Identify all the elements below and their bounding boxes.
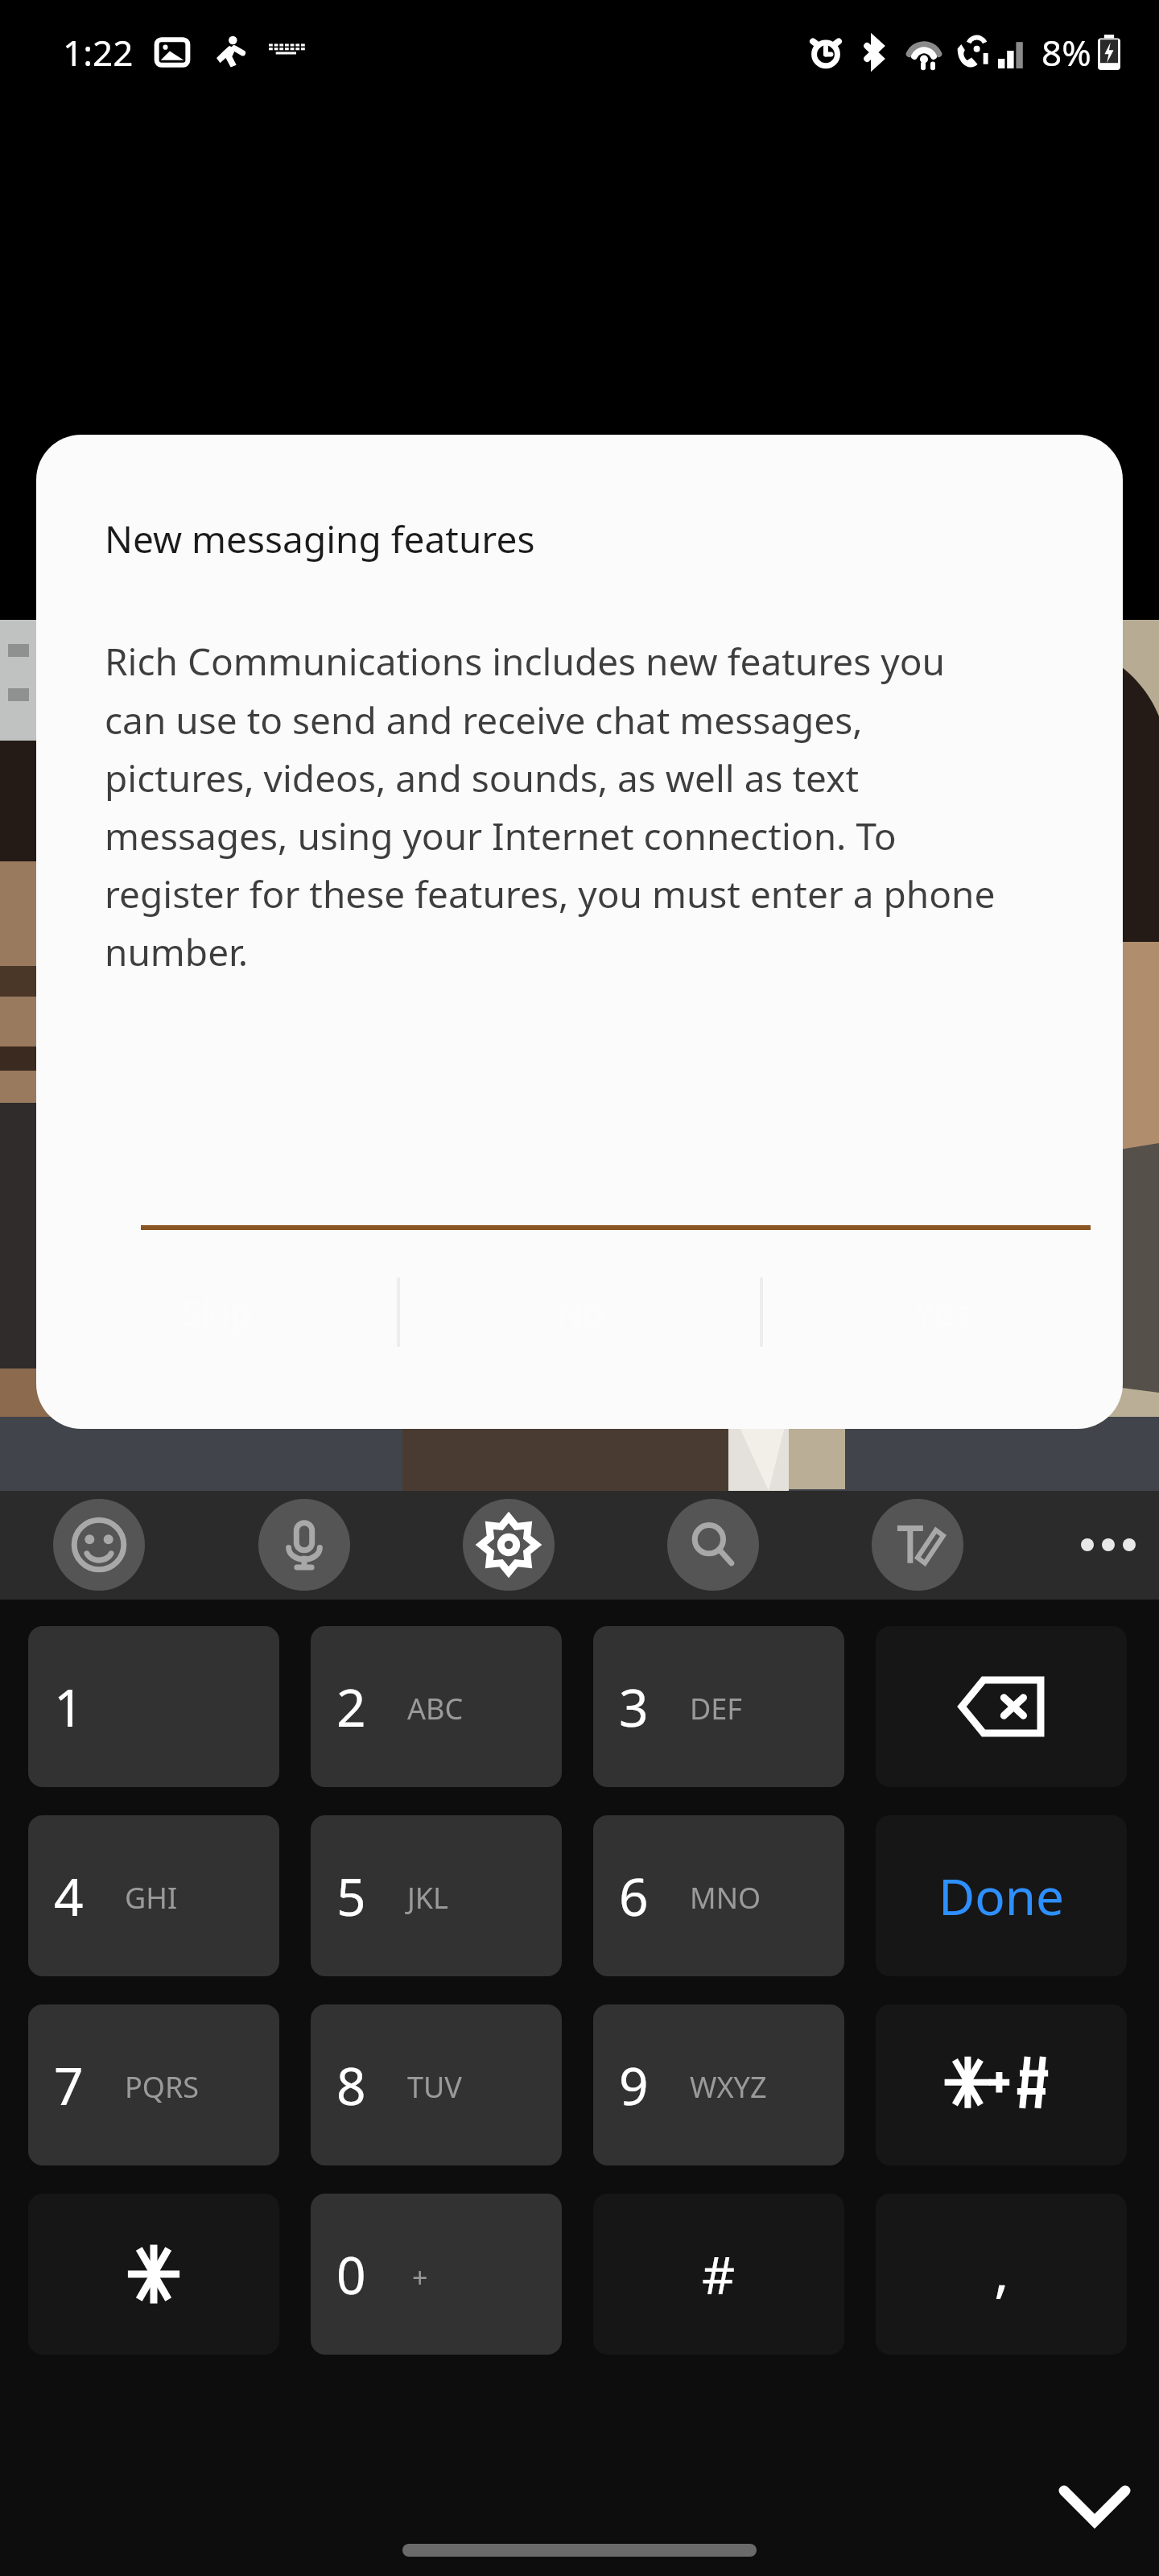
staticText: 6	[619, 1861, 649, 1931]
staticText: 8	[336, 2050, 366, 2120]
button[interactable]: Hide keyboard	[1038, 2447, 1151, 2560]
staticText: +	[412, 2259, 428, 2296]
staticText: TUV	[407, 2067, 462, 2107]
button[interactable]: ,	[876, 2194, 1127, 2355]
staticText: 1:22	[63, 28, 134, 76]
button[interactable]: 4	[28, 1815, 279, 1976]
button[interactable]: 1	[28, 1626, 279, 1787]
staticText: #	[702, 2240, 736, 2310]
button[interactable]: Done	[876, 1815, 1127, 1976]
button[interactable]: Backspace	[876, 1626, 1127, 1787]
button[interactable]: 3	[593, 1626, 844, 1787]
staticText: 2	[336, 1672, 366, 1742]
staticText: JKL	[407, 1878, 448, 1918]
staticText: ,	[994, 2231, 1009, 2308]
staticText: Done	[938, 1862, 1065, 1930]
button[interactable]: 2	[311, 1626, 562, 1787]
staticText: WXYZ	[690, 2067, 767, 2107]
staticText: 7	[54, 2050, 84, 2120]
staticText: ABC	[407, 1689, 464, 1728]
button[interactable]: Voice input	[258, 1499, 350, 1591]
button[interactable]: 8	[311, 2004, 562, 2165]
staticText: New messaging features	[105, 514, 535, 564]
staticText: PQRS	[125, 2067, 200, 2107]
button[interactable]: Emoji	[53, 1499, 145, 1591]
button[interactable]: Star plus hash	[876, 2004, 1127, 2165]
staticText: DEF	[690, 1689, 742, 1728]
staticText: 4	[54, 1861, 84, 1931]
button[interactable]: Star	[28, 2194, 279, 2355]
button[interactable]: More options	[1062, 1499, 1154, 1591]
staticText: 8%	[1041, 28, 1091, 76]
staticText: MNO	[690, 1878, 761, 1918]
staticText: Rich Communications includes new feature…	[105, 636, 998, 976]
button[interactable]: Search	[667, 1499, 759, 1591]
button[interactable]: Skip	[36, 1264, 397, 1360]
button[interactable]: 9	[593, 2004, 844, 2165]
staticText: GHI	[125, 1878, 178, 1918]
button[interactable]: 5	[311, 1815, 562, 1976]
staticText: 0	[336, 2240, 366, 2310]
staticText: 5	[336, 1861, 366, 1931]
button[interactable]: 6	[593, 1815, 844, 1976]
staticText: 3	[619, 1672, 649, 1742]
staticText: 9	[619, 2050, 649, 2120]
staticText: 1	[54, 1672, 84, 1742]
button[interactable]: 0	[311, 2194, 562, 2355]
button[interactable]: #	[593, 2194, 844, 2355]
button[interactable]: Text editing	[872, 1499, 963, 1591]
button[interactable]: 7	[28, 2004, 279, 2165]
button[interactable]: Keyboard settings	[463, 1499, 555, 1591]
